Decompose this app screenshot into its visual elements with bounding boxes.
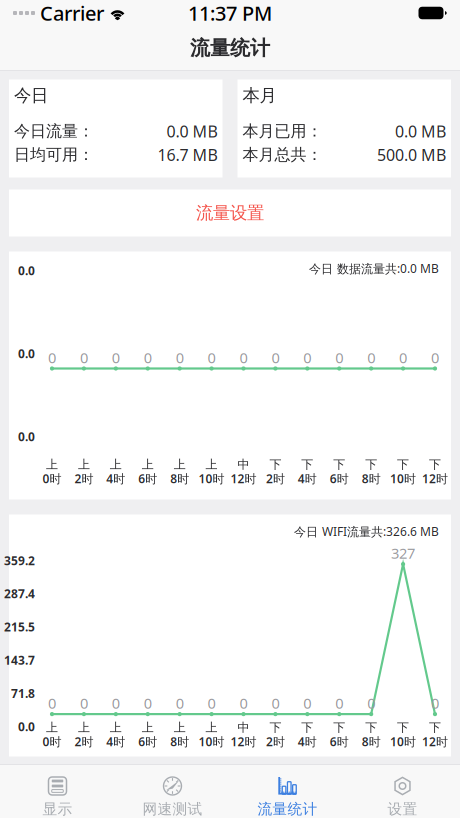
staticText: 8时 bbox=[170, 470, 189, 486]
staticText: 下 bbox=[333, 457, 345, 472]
staticText: 2时 bbox=[266, 470, 285, 486]
button[interactable]: 设置 bbox=[345, 765, 460, 818]
staticText: 4时 bbox=[106, 470, 125, 486]
staticText: 上 bbox=[142, 457, 154, 472]
staticText: 下 bbox=[333, 720, 345, 735]
staticText: 143.7 bbox=[4, 652, 35, 668]
staticText: 0 bbox=[335, 348, 343, 367]
staticText: 4时 bbox=[298, 470, 317, 486]
staticText: 0.0 bbox=[18, 718, 35, 734]
staticText: 2时 bbox=[266, 733, 285, 749]
staticText: 流量统计 bbox=[257, 800, 317, 818]
staticText: 0 bbox=[176, 693, 184, 713]
staticText: 上 bbox=[46, 720, 58, 735]
staticText: 0 bbox=[239, 693, 247, 713]
staticText: 500.0 MB bbox=[377, 144, 446, 165]
staticText: 0 bbox=[208, 348, 216, 367]
button[interactable]: 流量设置 bbox=[9, 189, 451, 236]
staticText: 16.7 MB bbox=[157, 144, 217, 165]
staticText: 0 bbox=[431, 348, 439, 367]
staticText: 12时 bbox=[230, 470, 256, 486]
staticText: 0 bbox=[112, 693, 120, 713]
staticText: 11:37 PM bbox=[188, 0, 272, 26]
staticText: 显示 bbox=[42, 800, 72, 818]
staticText: 2时 bbox=[74, 470, 93, 486]
staticText: 6时 bbox=[330, 470, 349, 486]
staticText: 0 bbox=[271, 693, 279, 713]
staticText: 设置 bbox=[387, 800, 417, 818]
staticText: 327 bbox=[391, 543, 415, 563]
staticText: 今日 bbox=[14, 85, 48, 106]
staticText: 12时 bbox=[230, 733, 256, 749]
staticText: 网速测试 bbox=[142, 800, 202, 818]
staticText: 10时 bbox=[390, 470, 416, 486]
button[interactable]: 显示 bbox=[0, 765, 115, 818]
staticText: 0 bbox=[367, 348, 375, 367]
staticText: 287.4 bbox=[4, 586, 35, 602]
staticText: 0.0 bbox=[18, 262, 35, 278]
staticText: 中 bbox=[237, 457, 249, 472]
staticText: 0 bbox=[144, 693, 152, 713]
staticText: 上 bbox=[46, 457, 58, 472]
staticText: 12时 bbox=[422, 470, 448, 486]
staticText: 0 bbox=[176, 348, 184, 367]
staticText: 本月总共： bbox=[242, 145, 322, 165]
staticText: 0 bbox=[335, 693, 343, 713]
staticText: 4时 bbox=[298, 733, 317, 749]
staticText: 8时 bbox=[170, 733, 189, 749]
staticText: 0 bbox=[80, 348, 88, 367]
staticText: 4时 bbox=[106, 733, 125, 749]
staticText: 流量设置 bbox=[196, 202, 264, 224]
staticText: 10时 bbox=[390, 733, 416, 749]
staticText: 0 bbox=[239, 348, 247, 367]
staticText: 2时 bbox=[74, 733, 93, 749]
staticText: 0.0 bbox=[18, 345, 35, 361]
staticText: 0 bbox=[431, 693, 439, 713]
staticText: 0时 bbox=[42, 733, 61, 749]
staticText: 下 bbox=[397, 720, 409, 735]
staticText: 今日流量： bbox=[14, 121, 94, 141]
button[interactable]: 网速测试 bbox=[115, 765, 230, 818]
staticText: 8时 bbox=[362, 733, 381, 749]
staticText: 359.2 bbox=[4, 552, 35, 568]
staticText: 0 bbox=[367, 693, 375, 713]
staticText: 今日 WIFI流量共:326.6 MB bbox=[294, 523, 439, 539]
staticText: 0 bbox=[271, 348, 279, 367]
staticText: 下 bbox=[397, 457, 409, 472]
staticText: 0 bbox=[112, 348, 120, 367]
staticText: 流量统计 bbox=[190, 36, 270, 60]
staticText: 0 bbox=[48, 348, 56, 367]
staticText: 本月已用： bbox=[242, 121, 322, 141]
staticText: 71.8 bbox=[11, 685, 35, 701]
staticText: 0 bbox=[399, 348, 407, 367]
staticText: 上 bbox=[174, 457, 186, 472]
staticText: 0时 bbox=[42, 470, 61, 486]
staticText: 下 bbox=[301, 457, 313, 472]
staticText: 下 bbox=[301, 720, 313, 735]
staticText: 6时 bbox=[138, 733, 157, 749]
staticText: 10时 bbox=[199, 470, 225, 486]
staticText: 今日 数据流量共:0.0 MB bbox=[309, 260, 439, 276]
staticText: 0 bbox=[48, 693, 56, 713]
staticText: 下 bbox=[429, 720, 441, 735]
staticText: Carrier bbox=[40, 0, 104, 26]
staticText: 下 bbox=[365, 457, 377, 472]
staticText: 0 bbox=[144, 348, 152, 367]
staticText: 0 bbox=[303, 348, 311, 367]
staticText: 本月 bbox=[242, 85, 276, 106]
staticText: 上 bbox=[110, 720, 122, 735]
staticText: 0 bbox=[303, 693, 311, 713]
staticText: 0 bbox=[208, 693, 216, 713]
staticText: 0.0 MB bbox=[166, 121, 217, 142]
staticText: 上 bbox=[142, 720, 154, 735]
staticText: 上 bbox=[78, 457, 90, 472]
staticText: 215.5 bbox=[4, 619, 35, 635]
staticText: 上 bbox=[110, 457, 122, 472]
staticText: 下 bbox=[429, 457, 441, 472]
staticText: 上 bbox=[174, 720, 186, 735]
staticText: 上 bbox=[78, 720, 90, 735]
button[interactable]: 流量统计 bbox=[230, 765, 345, 818]
staticText: 下 bbox=[269, 720, 281, 735]
staticText: 6时 bbox=[330, 733, 349, 749]
staticText: 0.0 MB bbox=[395, 121, 446, 142]
